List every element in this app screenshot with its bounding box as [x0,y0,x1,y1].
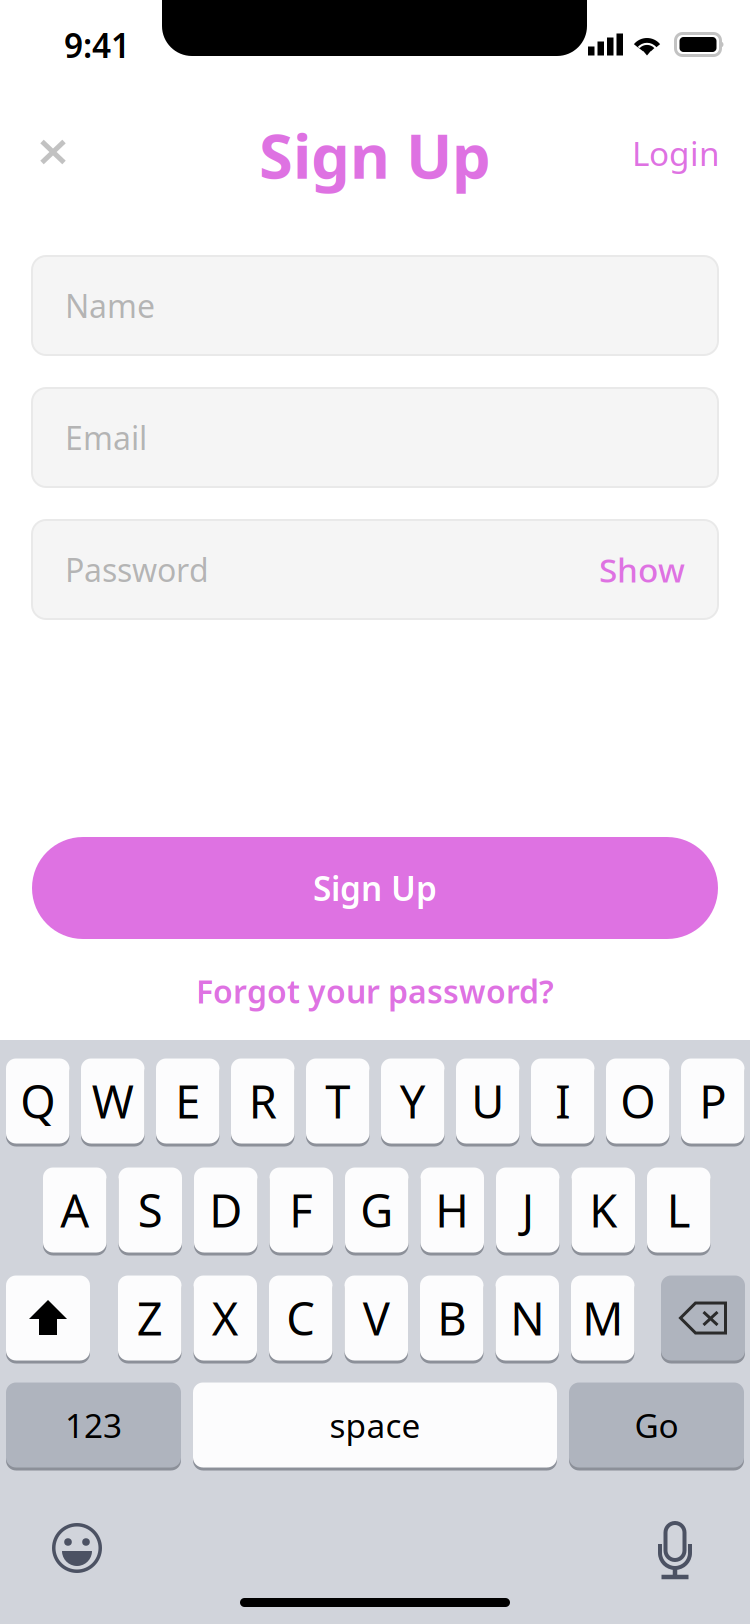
staticText: R [249,1071,277,1131]
staticText: P [699,1071,726,1131]
staticText: Sign Up [313,866,437,910]
staticText: space [329,1403,420,1447]
button[interactable]: Password [32,520,718,619]
button[interactable]: P [681,1057,744,1145]
button[interactable]: Login [570,111,720,195]
staticText: 9:41 [64,23,130,67]
staticText: Sign Up [259,114,491,196]
staticText: Show [599,547,685,592]
staticText: K [589,1180,617,1240]
staticText: T [325,1071,350,1131]
staticText: F [289,1180,313,1240]
staticText: I [555,1071,570,1131]
staticText: J [522,1180,534,1240]
button[interactable]: S [118,1166,182,1254]
button[interactable]: Go [569,1381,744,1469]
button[interactable]: Shift [6,1274,90,1362]
button[interactable]: space [193,1381,557,1469]
staticText: C [286,1288,315,1348]
button[interactable]: V [344,1274,408,1362]
staticText: D [209,1180,242,1240]
staticText: V [363,1288,390,1348]
staticText: O [620,1071,655,1131]
button[interactable]: U [456,1057,519,1145]
button[interactable]: X [193,1274,257,1362]
staticText: Name [65,284,155,327]
staticText: W [92,1071,134,1131]
staticText: L [667,1180,691,1240]
staticText: 123 [65,1403,122,1447]
button[interactable]: E [156,1057,219,1145]
staticText: Q [20,1071,55,1131]
staticText: B [437,1288,466,1348]
button[interactable]: Delete [661,1274,745,1362]
button[interactable]: R [231,1057,294,1145]
button[interactable]: Forgot your password? [32,961,718,1021]
button[interactable]: D [194,1166,257,1254]
staticText: H [435,1180,469,1240]
button[interactable]: T [306,1057,369,1145]
button[interactable]: J [496,1166,559,1254]
staticText: Y [400,1071,426,1131]
button[interactable]: B [420,1274,483,1362]
button[interactable]: 123 [6,1381,181,1469]
button[interactable]: K [571,1166,635,1254]
button[interactable]: Q [6,1057,69,1145]
button[interactable]: C [269,1274,332,1362]
staticText: Email [65,416,147,459]
staticText: Z [137,1288,163,1348]
button[interactable]: I [531,1057,594,1145]
button[interactable]: A [43,1166,106,1254]
button[interactable]: Emoji [51,1522,103,1574]
staticText: Go [634,1403,678,1447]
staticText: S [138,1180,163,1240]
staticText: E [175,1071,200,1131]
button[interactable]: N [495,1274,559,1362]
button[interactable]: Z [118,1274,181,1362]
staticText: X [212,1288,239,1348]
button[interactable]: L [647,1166,710,1254]
staticText: Password [65,548,209,591]
button[interactable]: M [571,1274,634,1362]
staticText: N [510,1288,544,1348]
staticText: M [582,1288,623,1348]
button[interactable]: Email [32,388,718,487]
staticText: Login [632,131,720,175]
staticText: U [471,1071,504,1131]
staticText: Forgot your password? [196,970,554,1012]
staticText: G [360,1180,393,1240]
button[interactable]: F [269,1166,333,1254]
button[interactable]: Y [381,1057,444,1145]
button[interactable]: Dictate [657,1523,693,1581]
button[interactable]: O [606,1057,669,1145]
button[interactable]: W [81,1057,144,1145]
button[interactable]: H [420,1166,484,1254]
button[interactable]: Name [32,256,718,355]
button[interactable]: Sign Up [32,837,718,939]
button[interactable]: Close [11,110,95,194]
button[interactable]: G [345,1166,408,1254]
staticText: A [60,1180,89,1240]
